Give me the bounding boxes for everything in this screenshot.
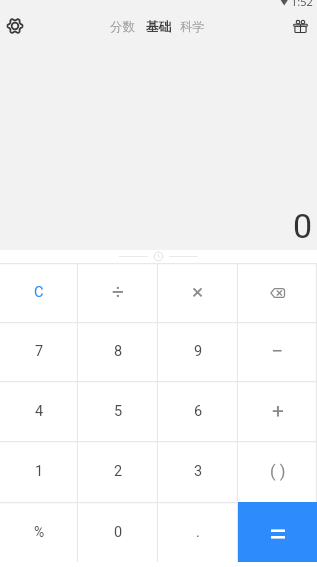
button[interactable]: 分数 <box>106 14 139 40</box>
button[interactable]: 3 <box>158 441 238 502</box>
staticText: 4 <box>35 403 44 420</box>
staticText: 6 <box>194 403 203 420</box>
staticText: × <box>192 280 204 305</box>
button[interactable]: 6 <box>158 381 238 441</box>
staticText: 5 <box>114 403 123 420</box>
button[interactable]: Decimal point <box>158 502 238 562</box>
staticText: . <box>196 524 200 541</box>
button[interactable]: Plus <box>238 381 317 441</box>
staticText: ( ) <box>270 462 286 481</box>
button[interactable]: 9 <box>158 322 238 381</box>
staticText: 1 <box>35 463 44 480</box>
button[interactable]: Divide <box>78 263 158 322</box>
staticText: 7 <box>35 343 44 360</box>
button[interactable]: Minus <box>238 322 317 381</box>
button[interactable]: Multiply <box>158 263 238 322</box>
staticText: 基础 <box>146 19 171 35</box>
staticText: 8 <box>114 343 123 360</box>
button[interactable]: 4 <box>0 381 78 441</box>
staticText: C <box>34 284 44 301</box>
staticText: 0 <box>114 524 123 541</box>
button[interactable]: 科学 <box>176 14 209 40</box>
button[interactable]: 2 <box>78 441 158 502</box>
staticText: ÷ <box>112 280 124 305</box>
button[interactable]: 0 <box>78 502 158 562</box>
button[interactable]: Parentheses <box>238 441 317 502</box>
button[interactable]: Backspace <box>238 263 317 322</box>
button[interactable]: 7 <box>0 322 78 381</box>
staticText: 2 <box>114 463 123 480</box>
button[interactable]: 基础 <box>142 14 175 40</box>
button[interactable]: Percent <box>0 502 78 562</box>
button[interactable]: Settings <box>2 13 28 39</box>
button[interactable]: 8 <box>78 322 158 381</box>
button[interactable]: Clear <box>0 263 78 322</box>
staticText: − <box>271 339 284 364</box>
staticText: % <box>34 524 45 540</box>
staticText: 0 <box>0 206 312 246</box>
button[interactable]: Equals <box>238 502 317 562</box>
button[interactable]: History <box>0 250 317 263</box>
staticText: 科学 <box>180 19 205 35</box>
button[interactable]: Gift <box>287 13 313 39</box>
staticText: 9 <box>194 343 203 360</box>
staticText: + <box>272 399 284 424</box>
button[interactable]: 5 <box>78 381 158 441</box>
staticText: 1:52 <box>291 0 313 6</box>
staticText: 3 <box>194 463 203 480</box>
staticText: 分数 <box>110 19 135 35</box>
button[interactable]: 1 <box>0 441 78 502</box>
